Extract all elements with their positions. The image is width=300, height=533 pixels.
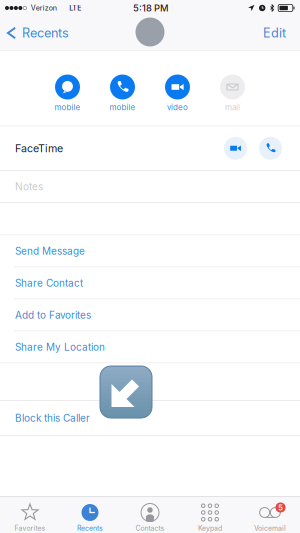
staticText: video	[167, 102, 188, 112]
staticText: Share My Location	[15, 341, 105, 353]
button[interactable]: Recents	[60, 497, 120, 533]
button[interactable]: Favorites	[0, 497, 60, 533]
button[interactable]: Recents	[0, 20, 77, 46]
staticText: Contacts	[135, 524, 164, 532]
staticText: mail	[225, 102, 240, 112]
button[interactable]: Send Message	[0, 235, 300, 266]
staticText: Recents	[77, 524, 103, 532]
staticText: Verizon	[31, 4, 57, 12]
button[interactable]: Contacts	[120, 497, 180, 533]
staticText: Keypad	[198, 524, 222, 532]
button[interactable]: mail	[207, 74, 257, 112]
staticText: Recents	[22, 25, 69, 41]
button[interactable]: Keypad	[180, 497, 240, 533]
button[interactable]: FaceTime audio	[247, 137, 282, 160]
staticText: Edit	[263, 25, 286, 41]
button[interactable]: video	[152, 74, 202, 112]
staticText: Notes	[15, 180, 43, 193]
button[interactable]: mobile	[42, 74, 92, 112]
button[interactable]: Block this Caller	[0, 401, 300, 435]
staticText: mobile	[54, 102, 80, 112]
staticText: Send Message	[15, 245, 85, 257]
button[interactable]: Edit	[251, 20, 300, 46]
button[interactable]: FaceTime video	[224, 137, 247, 160]
staticText: FaceTime	[15, 142, 63, 155]
staticText: LTE	[69, 4, 81, 12]
staticText: mobile	[109, 102, 135, 112]
staticText: Favorites	[14, 524, 45, 532]
staticText: Share Contact	[15, 277, 83, 289]
staticText: Voicemail	[254, 524, 286, 532]
staticText: Add to Favorites	[15, 309, 91, 321]
button[interactable]: Add to Favorites	[0, 299, 300, 330]
button[interactable]: mobile	[97, 74, 147, 112]
staticText: 5:18 PM	[133, 2, 169, 14]
staticText: 5	[278, 503, 283, 512]
button[interactable]: 5	[240, 497, 300, 533]
staticText: Block this Caller	[15, 412, 90, 424]
button[interactable]: Share Contact	[0, 267, 300, 298]
button[interactable]: Share My Location	[0, 331, 300, 362]
